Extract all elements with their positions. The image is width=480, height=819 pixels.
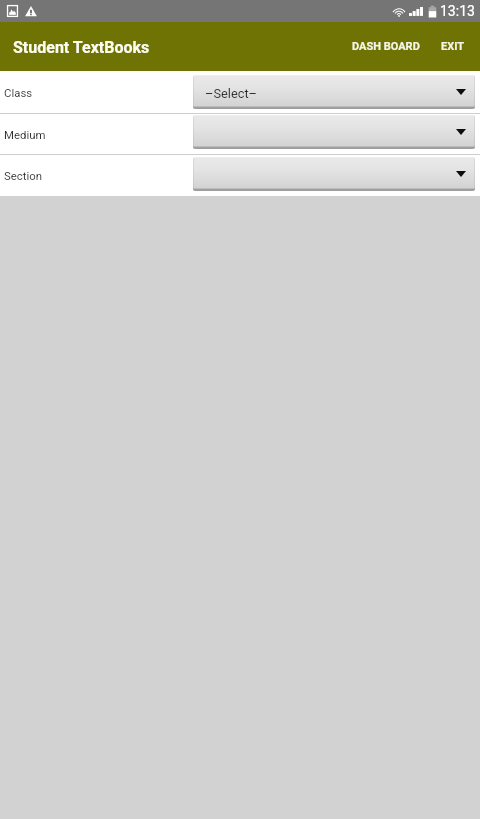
staticText: DASH BOARD bbox=[352, 40, 420, 53]
button[interactable]: EXIT bbox=[430, 26, 480, 67]
button[interactable]: Open dropdown bbox=[193, 157, 475, 191]
other: Open dropdown bbox=[456, 89, 466, 95]
other: Open dropdown bbox=[456, 171, 466, 177]
staticText: Student TextBooks bbox=[13, 38, 150, 57]
staticText: –Select– bbox=[205, 86, 257, 101]
staticText: EXIT bbox=[441, 40, 465, 53]
button[interactable]: Medium bbox=[0, 114, 480, 154]
staticText: Section bbox=[4, 169, 43, 182]
button[interactable]: Section bbox=[0, 155, 480, 196]
staticText: Medium bbox=[4, 128, 46, 141]
button[interactable]: Open dropdown bbox=[193, 115, 475, 149]
button[interactable]: –Select– bbox=[193, 75, 475, 109]
button[interactable]: DASH BOARD bbox=[342, 26, 430, 67]
staticText: Class bbox=[4, 86, 33, 99]
button[interactable]: Class bbox=[0, 71, 480, 113]
staticText: 13:13 bbox=[440, 3, 475, 19]
other: Open dropdown bbox=[456, 129, 466, 135]
